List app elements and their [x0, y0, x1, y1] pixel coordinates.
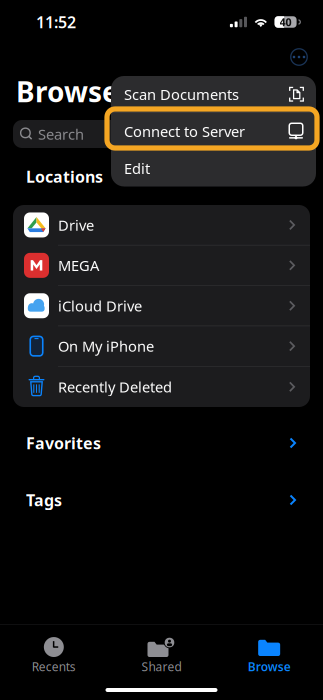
- staticText: Recently Deleted: [58, 377, 172, 397]
- button[interactable]: Scan Documents: [111, 76, 316, 112]
- button[interactable]: Recents: [0, 635, 108, 675]
- staticText: Connect to Server: [124, 121, 245, 141]
- staticText: Browse: [248, 658, 291, 674]
- button[interactable]: Shared: [108, 635, 215, 675]
- button[interactable]: MEGA: [13, 245, 310, 286]
- staticText: Browse: [16, 73, 119, 110]
- button[interactable]: More options: [282, 43, 316, 71]
- button[interactable]: Search: [13, 120, 310, 148]
- button[interactable]: On My iPhone: [13, 326, 310, 367]
- button[interactable]: Browse: [215, 635, 323, 675]
- staticText: Favorites: [26, 432, 101, 454]
- staticText: Drive: [58, 215, 94, 235]
- button[interactable]: Favorites: [0, 430, 323, 456]
- staticText: 40: [280, 15, 292, 29]
- button[interactable]: Edit: [111, 150, 316, 186]
- staticText: Scan Documents: [124, 84, 239, 104]
- staticText: Locations: [26, 166, 103, 187]
- staticText: iCloud Drive: [58, 296, 142, 315]
- staticText: Shared: [141, 658, 181, 674]
- staticText: Recents: [32, 658, 76, 674]
- staticText: MEGA: [58, 256, 99, 275]
- button[interactable]: Connect to Server: [111, 113, 316, 149]
- staticText: On My iPhone: [58, 336, 154, 356]
- staticText: Search: [38, 124, 84, 144]
- button[interactable]: Tags: [0, 487, 323, 513]
- button[interactable]: Recently Deleted: [13, 367, 310, 407]
- button[interactable]: Drive: [13, 205, 310, 245]
- staticText: Tags: [26, 489, 62, 511]
- staticText: 11:52: [36, 11, 76, 33]
- staticText: Edit: [124, 158, 150, 178]
- button[interactable]: iCloud Drive: [13, 286, 310, 326]
